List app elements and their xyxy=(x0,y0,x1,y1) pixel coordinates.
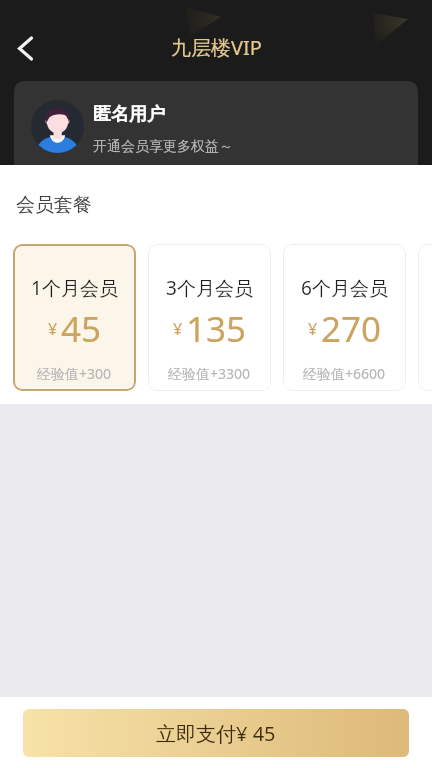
staticText: 6个月会员 xyxy=(301,275,388,301)
staticText: ¥ xyxy=(48,318,58,340)
staticText: 135 xyxy=(186,305,247,345)
button[interactable]: 3个月会员 xyxy=(148,244,271,391)
staticText: 开通会员享更多权益～ xyxy=(93,138,233,156)
staticText: 经验值+6600 xyxy=(303,364,386,383)
staticText: 匿名用户 xyxy=(93,103,165,126)
staticText: 270 xyxy=(321,305,382,345)
button[interactable]: 1个月会员 xyxy=(13,244,136,391)
staticText: 会员套餐 xyxy=(16,193,92,217)
button[interactable]: 6个月会员 xyxy=(283,244,406,391)
button[interactable]: 立即支付¥ 45 xyxy=(23,709,409,757)
staticText: ¥ xyxy=(308,318,318,340)
staticText: 45 xyxy=(61,305,102,345)
staticText: ¥ xyxy=(173,318,183,340)
button[interactable]: Back xyxy=(2,24,48,70)
staticText: 经验值+3300 xyxy=(168,364,251,383)
staticText: 九层楼VIP xyxy=(171,34,262,61)
button[interactable]: 12个月会员 xyxy=(418,244,432,391)
staticText: 1个月会员 xyxy=(31,275,118,301)
staticText: 立即支付¥ 45 xyxy=(156,720,276,747)
staticText: 经验值+300 xyxy=(37,364,112,383)
staticText: 3个月会员 xyxy=(166,275,253,301)
button[interactable]: 匿名用户 xyxy=(14,81,418,165)
